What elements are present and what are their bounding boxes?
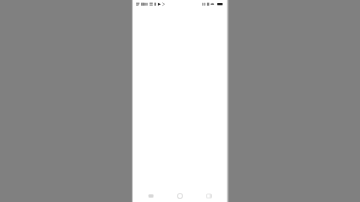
button[interactable]: Home	[174, 190, 186, 202]
button[interactable]: Back	[145, 190, 157, 202]
button[interactable]: Recent apps	[203, 190, 215, 202]
